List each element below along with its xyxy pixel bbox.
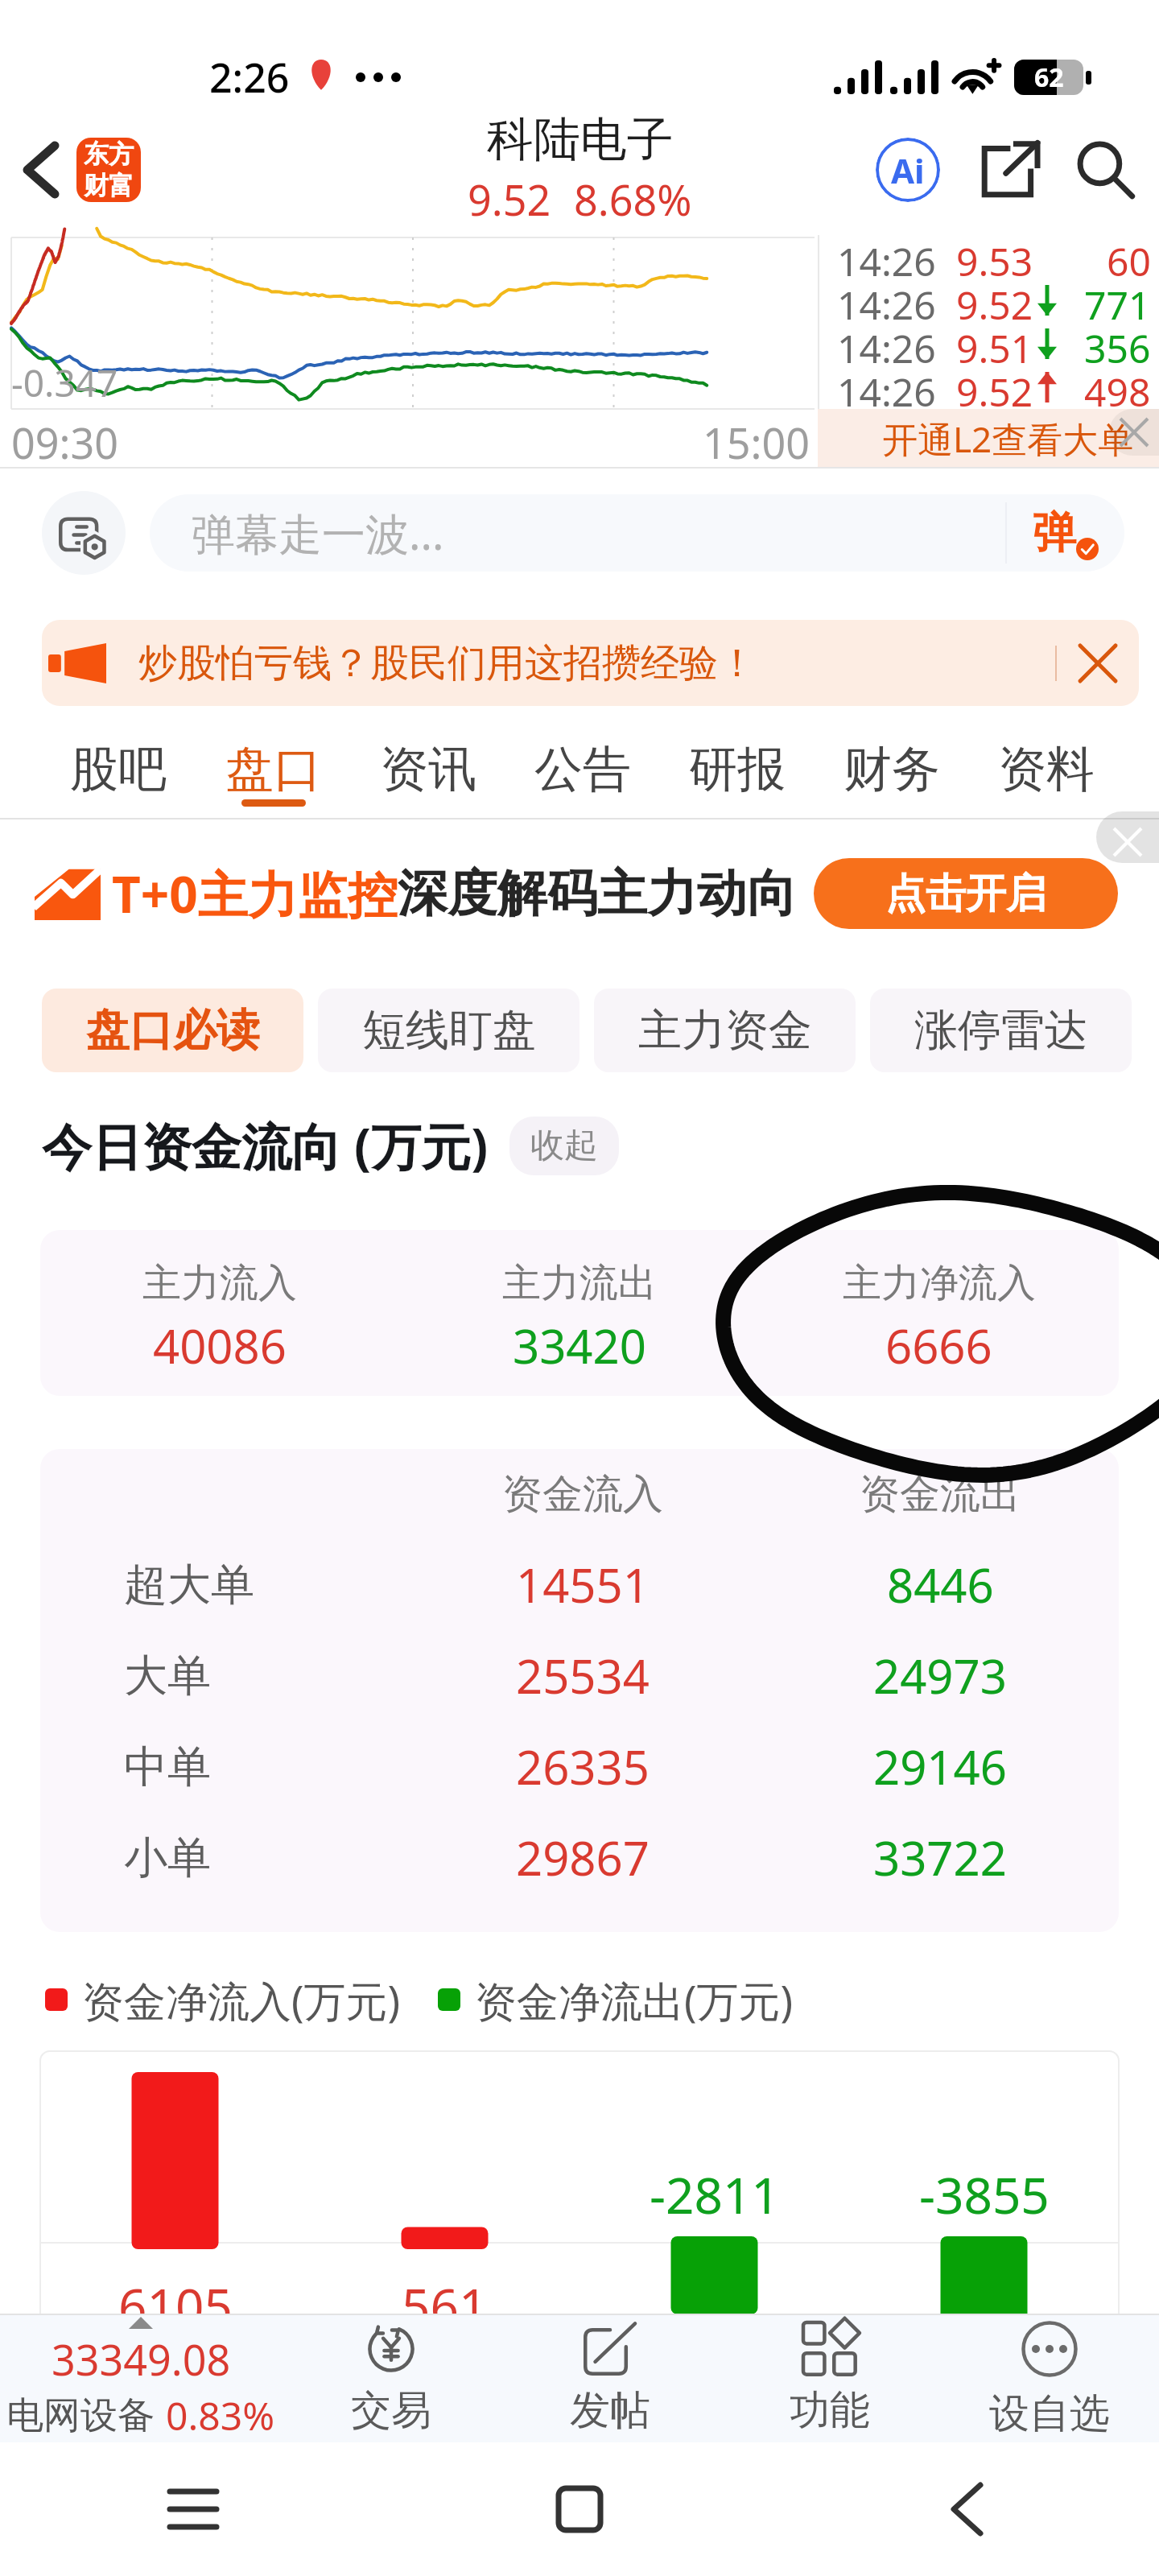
- staticText: 功能: [790, 2385, 870, 2436]
- staticText: 主力流入: [142, 1259, 297, 1307]
- staticText: 弹: [1033, 506, 1076, 560]
- staticText: 8.68%: [574, 171, 692, 228]
- button[interactable]: Dismiss banner: [1057, 620, 1139, 706]
- staticText: 科陆电子: [487, 110, 674, 169]
- staticText: 发帖: [570, 2385, 650, 2436]
- staticText: 60: [1107, 235, 1151, 279]
- button[interactable]: 公告: [505, 721, 660, 819]
- button[interactable]: 涨停雷达: [870, 989, 1132, 1072]
- staticText: 开通L2查看大单: [882, 415, 1134, 463]
- staticText: 14:26: [837, 322, 936, 365]
- staticText: 356: [1084, 322, 1151, 365]
- staticText: 财务: [843, 739, 940, 800]
- staticText: 33420: [513, 1314, 646, 1377]
- button[interactable]: 主力资金: [594, 989, 856, 1072]
- staticText: 2:26: [209, 50, 290, 105]
- staticText: 今日资金流向 (万元): [42, 1112, 489, 1180]
- staticText: 点击开启: [885, 869, 1046, 919]
- staticText: 14:26: [837, 365, 936, 409]
- staticText: 盘口: [225, 739, 322, 800]
- button[interactable]: Home: [386, 2442, 773, 2576]
- staticText: 盘口必读: [86, 1003, 260, 1058]
- staticText: 14551: [516, 1553, 650, 1616]
- button[interactable]: 设自选: [939, 2315, 1159, 2442]
- button[interactable]: Back: [773, 2442, 1159, 2576]
- staticText: 主力资金: [638, 1003, 812, 1058]
- button[interactable]: 发帖: [501, 2315, 720, 2442]
- staticText: 0.83%: [166, 2389, 275, 2442]
- staticText: 短线盯盘: [362, 1003, 536, 1058]
- staticText: 东方: [84, 138, 134, 170]
- staticText: 中单: [124, 1740, 211, 1794]
- button[interactable]: Close: [1109, 409, 1159, 456]
- button[interactable]: 财务: [815, 721, 969, 819]
- button[interactable]: 短线盯盘: [318, 989, 579, 1072]
- staticText: Ai: [891, 147, 925, 193]
- button[interactable]: 功能: [720, 2315, 939, 2442]
- button[interactable]: 收起: [509, 1117, 619, 1175]
- staticText: 771: [1084, 279, 1151, 322]
- button[interactable]: 交易: [282, 2315, 501, 2442]
- button[interactable]: 研报: [660, 721, 815, 819]
- button[interactable]: 东方: [76, 138, 141, 202]
- staticText: 9.52: [956, 279, 1033, 322]
- staticText: 26335: [516, 1735, 650, 1798]
- button[interactable]: 资讯: [351, 721, 505, 819]
- button[interactable]: 股吧: [40, 721, 196, 819]
- staticText: 29867: [516, 1826, 650, 1889]
- staticText: 财富: [84, 170, 134, 201]
- staticText: 24973: [873, 1644, 1007, 1707]
- staticText: 15:00: [703, 414, 810, 469]
- button[interactable]: 盘口: [196, 721, 351, 819]
- staticText: 主力净流入: [843, 1259, 1036, 1307]
- staticText: 大单: [124, 1649, 211, 1703]
- button[interactable]: 炒股怕亏钱？股民们用这招攒经验！: [42, 620, 1139, 706]
- staticText: 弹幕走一波...: [192, 503, 1005, 563]
- staticText: 电网设备: [6, 2392, 155, 2439]
- button[interactable]: Notes: [42, 491, 126, 575]
- staticText: 14:26: [837, 279, 936, 322]
- button[interactable]: Close ad: [1096, 811, 1159, 863]
- staticText: 资金净流入(万元): [82, 1971, 401, 2029]
- staticText: 资讯: [380, 739, 476, 800]
- button[interactable]: Search: [1067, 131, 1145, 208]
- staticText: 9.52: [956, 365, 1033, 409]
- staticText: T+0主力监控: [112, 860, 398, 928]
- staticText: 498: [1084, 365, 1151, 409]
- staticText: 9.52: [468, 171, 551, 228]
- staticText: 9.53: [956, 235, 1033, 279]
- staticText: 交易: [351, 2385, 431, 2436]
- staticText: -3855: [919, 2161, 1050, 2228]
- button[interactable]: Recent apps: [0, 2442, 386, 2576]
- staticText: 小单: [124, 1831, 211, 1885]
- staticText: -2811: [650, 2161, 780, 2228]
- staticText: 29146: [873, 1735, 1007, 1798]
- button[interactable]: 弹: [1007, 494, 1124, 572]
- button[interactable]: 弹幕走一波...: [150, 494, 1124, 572]
- staticText: 09:30: [11, 414, 118, 469]
- staticText: 25534: [516, 1644, 650, 1707]
- staticText: 6105: [118, 2272, 233, 2317]
- staticText: 9.51: [956, 322, 1033, 365]
- staticText: 资金流入: [502, 1469, 663, 1520]
- button[interactable]: Back: [2, 133, 76, 207]
- staticText: 资金净流出(万元): [475, 1971, 794, 2029]
- staticText: 公告: [534, 739, 631, 800]
- button[interactable]: Share: [971, 131, 1048, 208]
- staticText: 设自选: [989, 2388, 1110, 2439]
- staticText: 涨停雷达: [914, 1003, 1088, 1058]
- button[interactable]: 开通L2查看大单: [818, 409, 1159, 469]
- staticText: 资金流出: [860, 1469, 1021, 1520]
- staticText: -0.347: [11, 357, 118, 408]
- button[interactable]: AI assistant: [868, 130, 948, 210]
- staticText: 14:26: [837, 235, 936, 279]
- staticText: 33349.08: [52, 2330, 231, 2388]
- button[interactable]: 点击开启: [814, 858, 1118, 929]
- staticText: 研报: [689, 739, 786, 800]
- staticText: 超大单: [124, 1558, 254, 1612]
- button[interactable]: 资料: [969, 721, 1124, 819]
- button[interactable]: 盘口必读: [42, 989, 303, 1072]
- staticText: 62: [1034, 60, 1064, 95]
- staticText: 6666: [885, 1314, 992, 1377]
- button[interactable]: 33349.08: [0, 2315, 282, 2442]
